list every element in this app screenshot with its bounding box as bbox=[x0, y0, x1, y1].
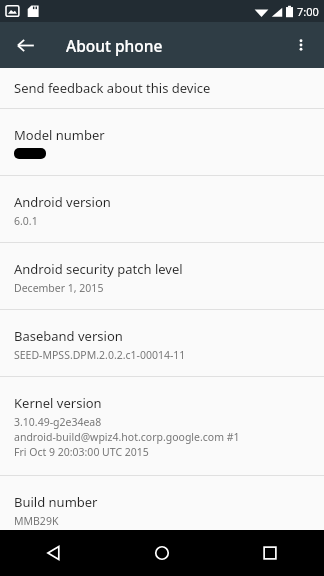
button[interactable]: Back bbox=[0, 530, 108, 576]
button[interactable]: Baseband version bbox=[0, 310, 324, 376]
button[interactable]: Android version bbox=[0, 176, 324, 242]
staticText: Android version bbox=[14, 193, 111, 211]
staticText: Fri Oct 9 20:03:00 UTC 2015 bbox=[14, 445, 149, 459]
staticText: android-build@wpiz4.hot.corp.google.com … bbox=[14, 430, 240, 444]
staticText: 6.0.1 bbox=[14, 214, 38, 228]
staticText: About phone bbox=[66, 35, 163, 56]
staticText: MMB29K bbox=[14, 514, 59, 528]
button[interactable]: Model number bbox=[0, 109, 324, 175]
staticText: Build number bbox=[14, 493, 98, 511]
staticText: SEED-MPSS.DPM.2.0.2.c1-00014-11 bbox=[14, 348, 186, 362]
button[interactable]: Home bbox=[108, 530, 216, 576]
button[interactable]: Send feedback about this device bbox=[0, 68, 324, 108]
button[interactable]: More options bbox=[282, 26, 320, 64]
staticText: Kernel version bbox=[14, 394, 102, 412]
staticText: 3.10.49-g2e34ea8 bbox=[14, 415, 102, 429]
staticText: Model number bbox=[14, 126, 105, 144]
staticText: Baseband version bbox=[14, 327, 123, 345]
staticText: December 1, 2015 bbox=[14, 281, 104, 295]
button[interactable]: Kernel version bbox=[0, 377, 324, 475]
button[interactable]: Android security patch level bbox=[0, 243, 324, 309]
button[interactable]: Build number bbox=[0, 476, 324, 530]
button[interactable]: Recent apps bbox=[216, 530, 324, 576]
staticText: Android security patch level bbox=[14, 260, 183, 278]
staticText: 7:00 bbox=[297, 4, 319, 19]
staticText: Send feedback about this device bbox=[14, 79, 211, 97]
button[interactable]: Navigate up bbox=[6, 26, 44, 64]
